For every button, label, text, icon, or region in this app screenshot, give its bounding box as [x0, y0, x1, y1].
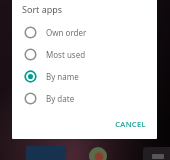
staticText: Most used	[46, 49, 86, 60]
button[interactable]: Most used	[12, 43, 157, 65]
staticText: Sort apps	[22, 3, 63, 15]
staticText: CANCEL	[115, 119, 146, 129]
button[interactable]: CANCEL	[110, 116, 151, 132]
staticText: By date	[46, 93, 75, 104]
button[interactable]: By name	[12, 65, 157, 87]
button[interactable]: Own order	[12, 21, 157, 43]
staticText: Own order	[46, 27, 87, 38]
button[interactable]: By date	[12, 87, 157, 109]
staticText: By name	[46, 71, 79, 82]
